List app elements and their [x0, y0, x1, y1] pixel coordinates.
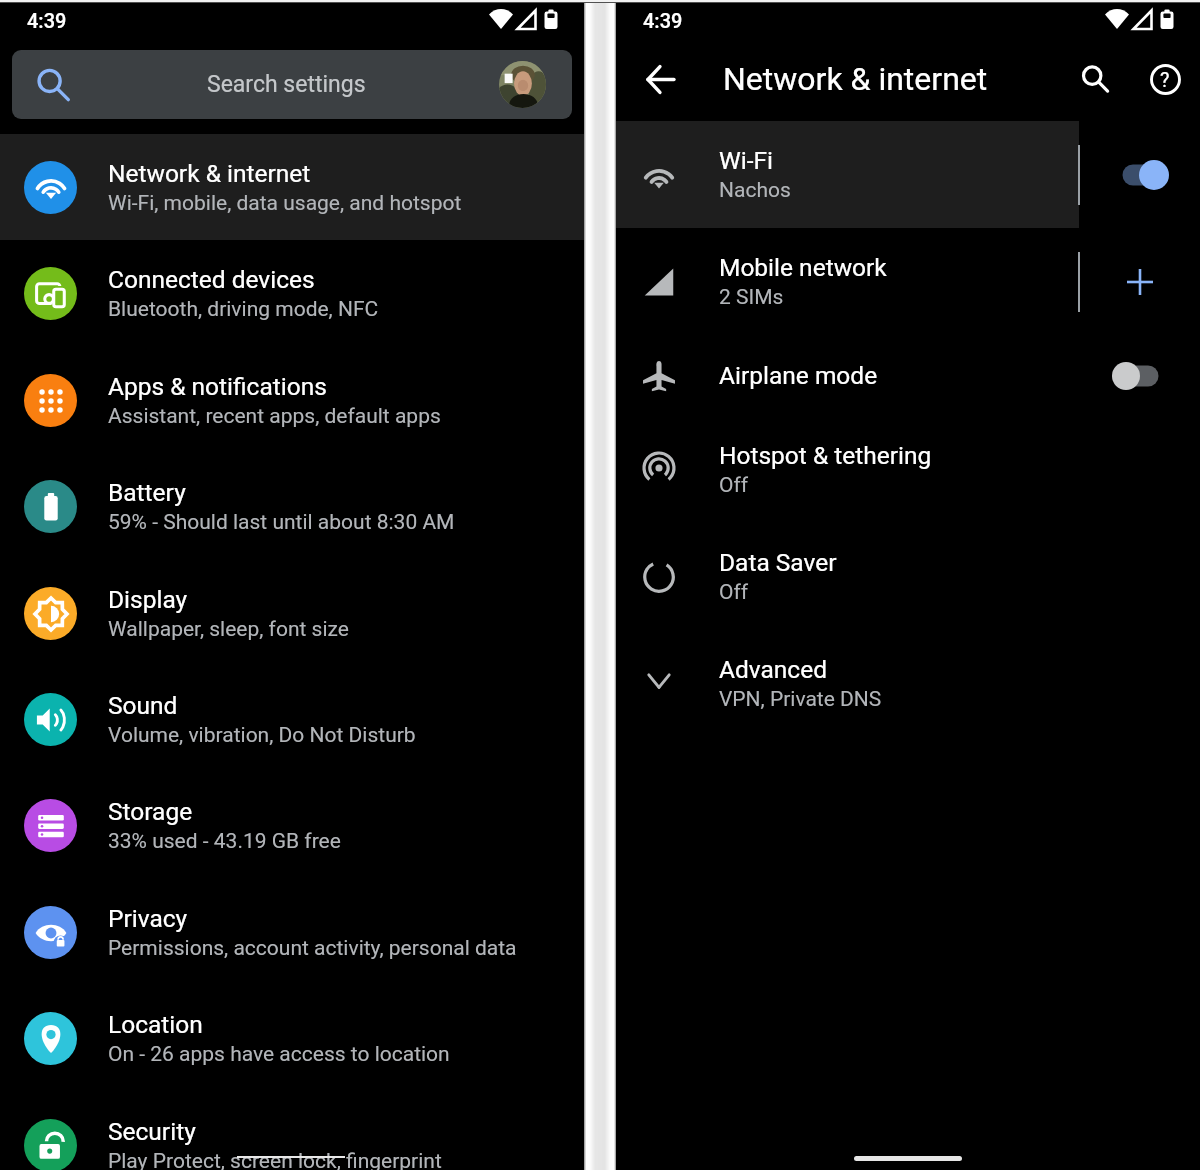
button[interactable]: Help [1137, 51, 1193, 107]
button[interactable]: Storage [0, 772, 584, 879]
staticText: VPN, Private DNS [719, 687, 882, 712]
staticText: Display [108, 585, 188, 614]
button[interactable]: Apps & notifications [0, 347, 584, 454]
button[interactable]: Back [632, 51, 688, 107]
button[interactable]: Security [0, 1092, 584, 1170]
staticText: On - 26 apps have access to location [108, 1042, 450, 1067]
staticText: Location [108, 1010, 203, 1039]
button[interactable]: Connected devices [0, 240, 584, 347]
staticText: ? [1160, 68, 1170, 91]
button[interactable]: Airplane mode [616, 335, 1200, 416]
button[interactable]: Privacy [0, 879, 584, 986]
button[interactable]: Advanced [616, 630, 1200, 737]
staticText: Network & internet [108, 159, 311, 188]
staticText: Search settings [207, 71, 366, 98]
staticText: Security [108, 1117, 196, 1146]
staticText: Network & internet [723, 60, 988, 98]
staticText: Battery [108, 478, 186, 507]
staticText: Off [719, 473, 749, 498]
button[interactable]: Wi-Fi [616, 121, 1200, 228]
staticText: Airplane mode [719, 361, 878, 390]
button[interactable]: Add SIM [1107, 254, 1173, 310]
staticText: Apps & notifications [108, 372, 327, 401]
staticText: Permissions, account activity, personal … [108, 936, 517, 961]
button[interactable]: Data Saver [616, 523, 1200, 630]
staticText: Wallpaper, sleep, font size [108, 617, 349, 642]
staticText: Bluetooth, driving mode, NFC [108, 297, 379, 322]
staticText: Volume, vibration, Do Not Disturb [108, 723, 416, 748]
staticText: 2 SIMs [719, 285, 784, 310]
button[interactable]: Mobile network [616, 228, 1200, 335]
button[interactable]: Location [0, 985, 584, 1092]
button[interactable]: Hotspot & tethering [616, 416, 1200, 523]
button[interactable]: Search [1067, 51, 1123, 107]
staticText: Storage [108, 797, 193, 826]
staticText: Mobile network [719, 253, 887, 282]
staticText: Sound [108, 691, 178, 720]
staticText: 33% used - 43.19 GB free [108, 829, 341, 854]
staticText: 4:39 [643, 9, 683, 32]
button[interactable]: Search settings [12, 50, 572, 119]
staticText: Nachos [719, 178, 791, 203]
staticText: Hotspot & tethering [719, 441, 932, 470]
button[interactable]: Display [0, 560, 584, 667]
button[interactable]: Network & internet [0, 134, 584, 241]
staticText: Play Protect, screen lock, fingerprint [108, 1149, 442, 1170]
button[interactable]: Battery [0, 453, 584, 560]
staticText: Privacy [108, 904, 188, 933]
staticText: Off [719, 580, 749, 605]
button[interactable]: Wi-Fi toggle [1113, 147, 1179, 203]
staticText: Wi-Fi [719, 146, 773, 175]
button[interactable]: Airplane mode toggle [1103, 348, 1169, 404]
staticText: Wi-Fi, mobile, data usage, and hotspot [108, 191, 462, 216]
button[interactable]: Sound [0, 666, 584, 773]
staticText: Connected devices [108, 265, 315, 294]
staticText: Advanced [719, 655, 827, 684]
staticText: Data Saver [719, 548, 837, 577]
staticText: Assistant, recent apps, default apps [108, 404, 441, 429]
staticText: 4:39 [27, 9, 67, 32]
staticText: 59% - Should last until about 8:30 AM [108, 510, 455, 535]
